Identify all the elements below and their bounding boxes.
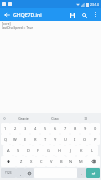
staticText: [core]: [2, 22, 11, 26]
button[interactable]: J: [65, 145, 76, 156]
button[interactable]: V: [46, 156, 56, 167]
staticText: G: [47, 148, 50, 153]
staticText: J: [70, 148, 72, 153]
button[interactable]: Enter: [86, 168, 100, 178]
button[interactable]: B: [56, 156, 66, 167]
button[interactable]: L: [87, 145, 98, 156]
button[interactable]: A: [3, 145, 13, 156]
button[interactable]: 6: [50, 123, 60, 134]
button[interactable]: 3: [20, 123, 30, 134]
staticText: .: [81, 171, 83, 176]
button[interactable]: Back: [0, 8, 13, 21]
staticText: A: [7, 148, 10, 153]
button[interactable]: F: [33, 145, 43, 156]
button[interactable]: K: [76, 145, 87, 156]
staticText: O: [83, 137, 87, 142]
staticText: ,: [20, 171, 22, 176]
staticText: H: [58, 148, 61, 153]
button[interactable]: W: [10, 134, 20, 145]
staticText: Q: [4, 137, 8, 142]
button[interactable]: E: [20, 134, 30, 145]
button[interactable]: Shift: [1, 156, 16, 167]
button[interactable]: Voice input: [0, 113, 8, 123]
staticText: X: [30, 159, 33, 164]
button[interactable]: P: [90, 134, 100, 145]
staticText: 5: [44, 126, 47, 131]
staticText: P: [94, 137, 97, 142]
button[interactable]: H: [54, 145, 65, 156]
staticText: 23:14: [90, 2, 99, 7]
button[interactable]: S: [13, 145, 23, 156]
staticText: 4: [34, 126, 37, 131]
button[interactable]: Emoji: [25, 168, 34, 178]
button[interactable]: Y: [50, 134, 60, 145]
staticText: L: [91, 148, 94, 153]
staticText: Y: [54, 137, 57, 142]
button[interactable]: Ciao: [39, 113, 70, 123]
button[interactable]: 4: [30, 123, 40, 134]
staticText: B: [60, 159, 63, 164]
button[interactable]: M: [76, 156, 86, 167]
button[interactable]: N: [66, 156, 76, 167]
staticText: T: [44, 137, 47, 142]
staticText: I: [74, 137, 76, 142]
button[interactable]: C: [36, 156, 46, 167]
staticText: Z: [20, 159, 23, 164]
button[interactable]: G: [43, 145, 54, 156]
button[interactable]: 9: [80, 123, 90, 134]
staticText: 8: [74, 126, 77, 131]
button[interactable]: Search: [78, 9, 90, 21]
staticText: D: [27, 148, 30, 153]
button[interactable]: Q: [1, 134, 10, 145]
button[interactable]: ?123: [1, 168, 16, 178]
button[interactable]: R: [30, 134, 40, 145]
button[interactable]: Gracie: [8, 113, 39, 123]
staticText: W: [13, 137, 17, 142]
staticText: 0: [94, 126, 97, 131]
staticText: lastDiscSpeed = True: [2, 26, 33, 30]
staticText: 2: [14, 126, 17, 131]
staticText: R: [34, 137, 37, 142]
staticText: 7: [64, 126, 67, 131]
button[interactable]: O: [80, 134, 90, 145]
button[interactable]: More options: [90, 9, 101, 20]
button[interactable]: 8: [70, 123, 80, 134]
staticText: ?123: [5, 171, 12, 175]
staticText: M: [79, 159, 83, 164]
staticText: GHQE7D.ini: [13, 11, 66, 18]
staticText: Il: [84, 116, 87, 121]
staticText: Gracie: [18, 116, 29, 121]
button[interactable]: Backspace: [86, 156, 100, 167]
button[interactable]: 1: [1, 123, 10, 134]
button[interactable]: ,: [16, 168, 25, 178]
staticText: S: [17, 148, 20, 153]
staticText: E: [24, 137, 27, 142]
staticText: N: [69, 159, 73, 164]
button[interactable]: I: [70, 134, 80, 145]
staticText: F: [37, 148, 40, 153]
staticText: C: [40, 159, 43, 164]
button[interactable]: X: [26, 156, 36, 167]
button[interactable]: T: [40, 134, 50, 145]
staticText: Ciao: [51, 116, 59, 121]
button[interactable]: 0: [90, 123, 100, 134]
button[interactable]: Il: [70, 113, 101, 123]
staticText: V: [50, 159, 53, 164]
button[interactable]: Save: [66, 9, 78, 21]
button[interactable]: 7: [60, 123, 70, 134]
button[interactable]: D: [23, 145, 33, 156]
staticText: 6: [54, 126, 57, 131]
staticText: 9: [84, 126, 87, 131]
staticText: U: [64, 137, 67, 142]
button[interactable]: U: [60, 134, 70, 145]
button[interactable]: 2: [10, 123, 20, 134]
staticText: 3: [24, 126, 27, 131]
staticText: 1: [4, 126, 7, 131]
staticText: K: [80, 148, 83, 153]
button[interactable]: 5: [40, 123, 50, 134]
button[interactable]: Z: [16, 156, 26, 167]
